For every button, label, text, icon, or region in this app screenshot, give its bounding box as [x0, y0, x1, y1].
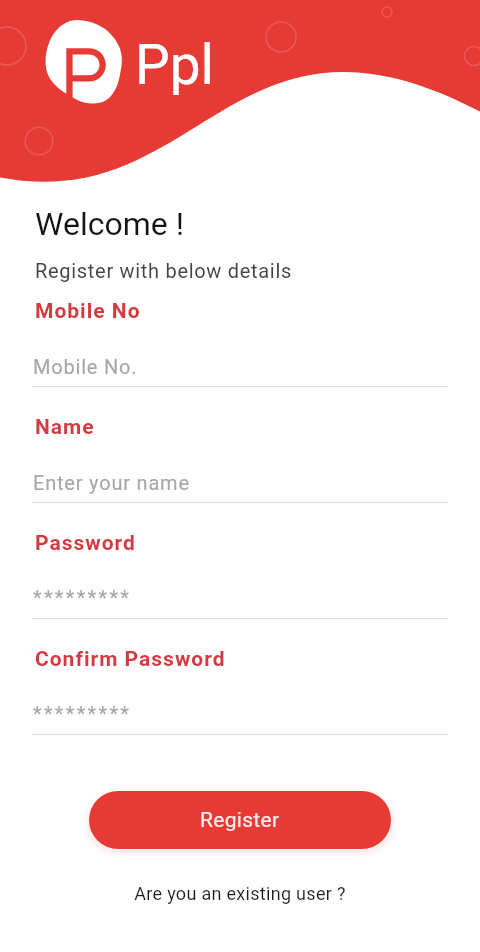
staticText: Welcome ! — [35, 205, 184, 243]
staticText: Register with below details — [35, 259, 292, 282]
staticText: ********* — [33, 586, 132, 609]
staticText: Mobile No. — [33, 355, 138, 378]
staticText: Ppl — [135, 33, 214, 97]
staticText: Enter your name — [33, 471, 190, 494]
staticText: ********* — [33, 702, 132, 725]
staticText: Name — [35, 415, 95, 440]
staticText: Are you an existing user ? — [134, 883, 346, 904]
staticText: Confirm Password — [35, 647, 226, 672]
staticText: Mobile No — [35, 299, 141, 324]
button[interactable]: Are you an existing user ? — [0, 876, 480, 910]
staticText: Register — [200, 808, 280, 833]
staticText: Password — [35, 531, 136, 556]
other: Ppl — [135, 33, 214, 97]
button[interactable]: Register — [89, 791, 391, 849]
